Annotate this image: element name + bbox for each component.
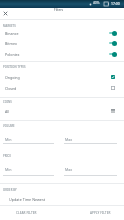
staticText: Min bbox=[5, 137, 12, 142]
staticText: POSITION TYPES bbox=[3, 65, 26, 69]
staticText: APPLY FILTER bbox=[90, 211, 111, 215]
staticText: VOLUME bbox=[3, 124, 15, 128]
button[interactable]: Min bbox=[3, 137, 54, 145]
staticText: COINS bbox=[3, 100, 12, 104]
staticText: Closed bbox=[5, 86, 17, 91]
button[interactable]: Binance bbox=[0, 28, 124, 38]
button[interactable]: Bitmex bbox=[0, 38, 124, 48]
staticText: Ongoing bbox=[5, 75, 20, 80]
staticText: MARKETS bbox=[3, 24, 16, 28]
button[interactable]: Ongoing bbox=[0, 72, 124, 82]
staticText: PRICE bbox=[3, 154, 11, 158]
button[interactable]: Max bbox=[64, 167, 117, 175]
staticText: Update Time Newest bbox=[9, 197, 46, 202]
button[interactable]: APPLY FILTER bbox=[80, 206, 121, 219]
staticText: Max bbox=[65, 137, 73, 142]
staticText: Min bbox=[5, 167, 12, 172]
staticText: ORDER BY bbox=[3, 188, 17, 192]
button[interactable]: Choose coins bbox=[108, 106, 117, 115]
button[interactable]: Close bbox=[0, 8, 11, 19]
staticText: CLEAR FILTER bbox=[16, 211, 37, 215]
button[interactable]: Min bbox=[3, 167, 54, 175]
button[interactable]: Poloniex bbox=[0, 49, 124, 59]
staticText: 40% bbox=[93, 1, 100, 5]
staticText: Binance bbox=[5, 31, 19, 36]
staticText: 17:00 bbox=[111, 1, 120, 6]
staticText: Poloniex bbox=[5, 52, 20, 57]
button[interactable]: Closed bbox=[0, 83, 124, 93]
staticText: Bitmex bbox=[5, 41, 17, 46]
staticText: All bbox=[5, 109, 10, 114]
button[interactable]: All bbox=[0, 106, 124, 116]
staticText: Max bbox=[65, 167, 73, 172]
button[interactable]: Max bbox=[64, 137, 117, 145]
button[interactable]: CLEAR FILTER bbox=[6, 206, 47, 219]
staticText: Filters bbox=[54, 8, 64, 12]
button[interactable]: Update Time Newest bbox=[0, 194, 124, 204]
